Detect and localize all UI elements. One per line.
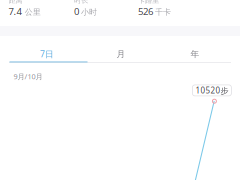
staticText: 小时: [81, 7, 97, 17]
staticText: 7日: [40, 48, 54, 60]
button[interactable]: 月: [84, 43, 158, 65]
staticText: 千卡: [155, 7, 171, 17]
staticText: 距离: [8, 0, 22, 5]
staticText: 7.4: [8, 5, 21, 18]
staticText: 0: [74, 5, 79, 18]
button[interactable]: 距离: [8, 0, 74, 26]
button[interactable]: 年: [158, 43, 232, 65]
button[interactable]: 7日: [10, 43, 84, 65]
staticText: 10520步: [195, 85, 228, 96]
button[interactable]: 时长: [74, 0, 140, 26]
staticText: 卡路里: [138, 0, 159, 5]
button[interactable]: 卡路里: [138, 0, 204, 26]
staticText: 公里: [25, 7, 41, 17]
staticText: 9月/10月: [14, 71, 43, 81]
staticText: 526: [138, 5, 153, 18]
staticText: 时长: [74, 0, 88, 5]
staticText: 月: [116, 48, 125, 59]
staticText: 年: [190, 48, 199, 59]
